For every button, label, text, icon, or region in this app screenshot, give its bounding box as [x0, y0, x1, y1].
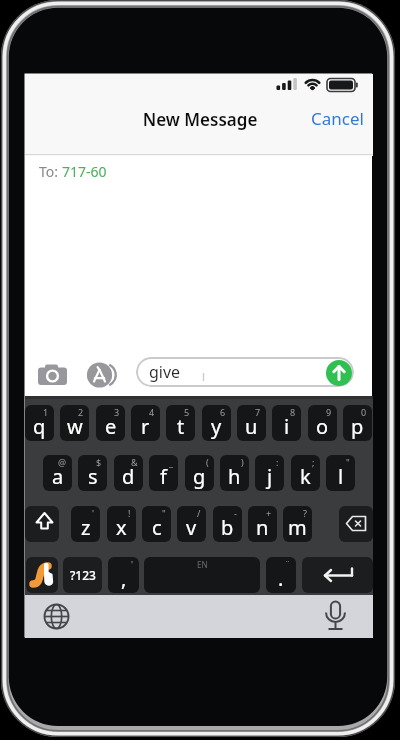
button[interactable]: z: [71, 506, 100, 542]
staticText: o: [316, 413, 329, 440]
staticText: g: [193, 463, 206, 490]
staticText: s: [88, 463, 98, 490]
staticText: $: [96, 456, 102, 468]
staticText: .: [278, 565, 284, 592]
button[interactable]: [25, 506, 59, 542]
staticText: 1: [43, 406, 49, 418]
staticText: n: [256, 514, 269, 541]
button[interactable]: o: [308, 405, 337, 441]
button[interactable]: e: [96, 405, 125, 441]
staticText: 6: [220, 406, 226, 418]
staticText: To:: [39, 162, 62, 181]
staticText: w: [67, 413, 83, 440]
staticText: l: [338, 463, 344, 490]
staticText: ): [241, 456, 244, 468]
button[interactable]: r: [131, 405, 160, 441]
button[interactable]: j: [255, 455, 284, 491]
staticText: (: [206, 456, 209, 468]
button[interactable]: [326, 360, 352, 386]
button[interactable]: p: [343, 405, 372, 441]
button[interactable]: [63, 557, 102, 593]
staticText: 717-60: [62, 162, 107, 181]
button[interactable]: w: [60, 405, 89, 441]
button[interactable]: [38, 599, 74, 635]
button[interactable]: give: [136, 357, 354, 387]
staticText: 2: [78, 406, 84, 418]
button[interactable]: q: [25, 405, 54, 441]
staticText: -: [234, 507, 237, 519]
staticText: give: [149, 361, 181, 383]
staticText: c: [152, 514, 162, 541]
staticText: i: [284, 413, 290, 440]
staticText: +: [266, 507, 272, 519]
staticText: r: [141, 413, 150, 440]
button[interactable]: [36, 360, 69, 388]
button[interactable]: [318, 599, 354, 635]
button[interactable]: s: [78, 455, 107, 491]
button[interactable]: [302, 557, 373, 593]
staticText: a: [52, 463, 64, 490]
button[interactable]: n: [248, 506, 277, 542]
staticText: ¨: [285, 558, 291, 570]
button[interactable]: .: [266, 557, 296, 593]
staticText: &: [131, 456, 138, 468]
staticText: ': [131, 558, 134, 570]
button[interactable]: f: [149, 455, 178, 491]
button[interactable]: k: [291, 455, 320, 491]
button[interactable]: [26, 557, 58, 593]
staticText: ': [92, 507, 95, 519]
staticText: !: [128, 507, 131, 519]
staticText: 8: [290, 406, 296, 418]
button[interactable]: v: [177, 506, 206, 542]
staticText: q: [33, 413, 46, 440]
staticText: ?123: [70, 567, 96, 583]
staticText: e: [105, 413, 117, 440]
staticText: p: [351, 413, 364, 440]
button[interactable]: Cancel: [310, 104, 370, 132]
button[interactable]: h: [220, 455, 249, 491]
staticText: 4: [149, 406, 155, 418]
staticText: ,: [121, 565, 127, 592]
staticText: v: [186, 514, 197, 541]
staticText: @: [58, 456, 67, 468]
button[interactable]: b: [213, 506, 242, 542]
staticText: ?: [303, 507, 307, 519]
staticText: 9: [326, 406, 332, 418]
button[interactable]: g: [185, 455, 214, 491]
button[interactable]: l: [326, 455, 355, 491]
button[interactable]: ,: [108, 557, 139, 593]
staticText: ": [162, 507, 166, 519]
staticText: u: [245, 413, 258, 440]
staticText: j: [267, 463, 273, 490]
staticText: /: [197, 507, 201, 519]
button[interactable]: [339, 506, 373, 542]
button[interactable]: m: [283, 506, 312, 542]
staticText: :: [276, 456, 279, 468]
staticText: _: [169, 456, 173, 468]
button[interactable]: [144, 557, 260, 593]
button[interactable]: [86, 361, 114, 389]
button[interactable]: u: [237, 405, 266, 441]
staticText: z: [81, 514, 91, 541]
staticText: 0: [361, 406, 367, 418]
staticText: m: [288, 514, 307, 541]
staticText: 7: [255, 406, 261, 418]
staticText: b: [221, 514, 234, 541]
button[interactable]: x: [107, 506, 136, 542]
button[interactable]: c: [142, 506, 171, 542]
staticText: 3: [114, 406, 120, 418]
button[interactable]: t: [166, 405, 195, 441]
staticText: f: [160, 463, 167, 490]
button[interactable]: To:: [25, 156, 373, 186]
staticText: k: [300, 463, 311, 490]
staticText: New Message: [0, 108, 400, 131]
staticText: EN: [197, 559, 208, 570]
button[interactable]: a: [43, 455, 72, 491]
button[interactable]: d: [114, 455, 143, 491]
staticText: ": [346, 456, 350, 468]
button[interactable]: y: [202, 405, 231, 441]
staticText: Cancel: [311, 107, 364, 130]
staticText: h: [228, 463, 241, 490]
staticText: ;: [312, 456, 315, 468]
button[interactable]: i: [272, 405, 301, 441]
